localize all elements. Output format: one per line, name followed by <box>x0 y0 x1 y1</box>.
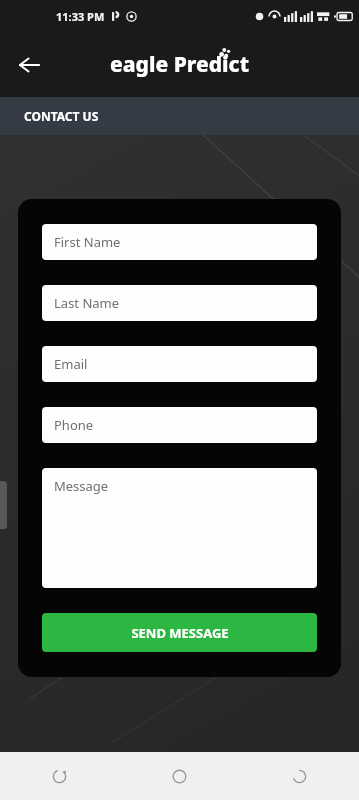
staticText: eagle Predict <box>110 50 250 79</box>
staticText: 11:33 PM <box>56 9 105 24</box>
staticText: Last Name <box>54 294 120 312</box>
button[interactable]: Recent apps <box>0 752 119 800</box>
button[interactable]: Home <box>119 752 239 800</box>
button[interactable]: Email <box>42 346 317 382</box>
staticText: SEND MESSAGE <box>131 624 229 642</box>
button[interactable]: SEND MESSAGE <box>42 613 317 652</box>
button[interactable]: Back <box>239 752 359 800</box>
staticText: CONTACT US <box>24 108 99 124</box>
staticText: Email <box>54 355 88 373</box>
staticText: Message <box>54 477 109 495</box>
button[interactable]: Last Name <box>42 285 317 321</box>
button[interactable]: First Name <box>42 224 317 260</box>
staticText: Phone <box>54 416 94 434</box>
button[interactable]: Back <box>8 43 52 87</box>
button[interactable]: Phone <box>42 407 317 443</box>
staticText: First Name <box>54 233 121 251</box>
button[interactable]: Message <box>42 468 317 588</box>
